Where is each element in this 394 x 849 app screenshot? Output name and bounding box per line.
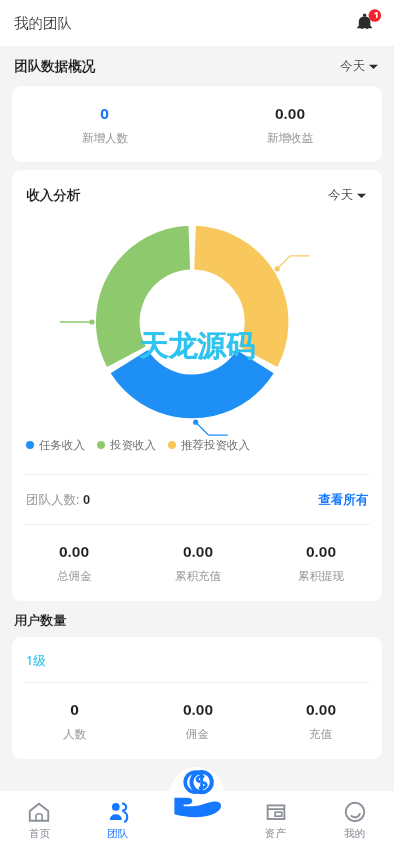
- staticText: 任务收入: [39, 438, 85, 452]
- staticText: 0: [100, 103, 109, 123]
- staticText: 0.00: [183, 541, 213, 561]
- button[interactable]: 首页: [0, 791, 78, 849]
- button[interactable]: 今天: [326, 184, 368, 206]
- staticText: 团队人数:: [26, 491, 83, 508]
- button[interactable]: Earn money: [168, 763, 226, 821]
- button[interactable]: 资产: [236, 791, 315, 849]
- button[interactable]: 我的: [315, 791, 394, 849]
- button[interactable]: 团队: [78, 791, 157, 849]
- staticText: 天龙源码: [139, 328, 255, 365]
- button[interactable]: 0: [12, 86, 382, 162]
- button[interactable]: Notifications: [352, 8, 382, 38]
- staticText: 0: [83, 491, 91, 508]
- staticText: 累积提现: [298, 569, 344, 583]
- staticText: 0.00: [183, 699, 213, 719]
- staticText: 我的团队: [14, 14, 72, 32]
- staticText: 0: [70, 699, 79, 719]
- staticText: 总佣金: [57, 569, 92, 583]
- staticText: 收入分析: [26, 187, 80, 204]
- staticText: 推荐投资收入: [181, 438, 250, 452]
- staticText: 投资收入: [110, 438, 156, 452]
- staticText: 0.00: [275, 103, 305, 123]
- staticText: 用户数量: [14, 612, 66, 628]
- staticText: 充值: [309, 727, 332, 741]
- staticText: 1: [374, 9, 379, 20]
- staticText: 我的: [344, 827, 365, 840]
- staticText: 1级: [26, 652, 46, 669]
- staticText: 今天: [328, 187, 353, 203]
- staticText: 首页: [29, 827, 50, 840]
- staticText: 新增收益: [267, 131, 313, 145]
- button[interactable]: 今天: [338, 55, 380, 77]
- staticText: 团队数据概况: [14, 58, 95, 75]
- staticText: 累积充值: [175, 569, 221, 583]
- staticText: 人数: [63, 727, 86, 741]
- button[interactable]: 团队人数:: [12, 475, 382, 524]
- staticText: 0.00: [59, 541, 89, 561]
- staticText: 0.00: [306, 541, 336, 561]
- staticText: 资产: [265, 827, 286, 840]
- staticText: 佣金: [186, 727, 209, 741]
- staticText: 0.00: [306, 699, 336, 719]
- staticText: 今天: [340, 58, 365, 74]
- staticText: 新增人数: [82, 131, 128, 145]
- staticText: 团队: [107, 827, 128, 840]
- staticText: 查看所有: [318, 492, 368, 508]
